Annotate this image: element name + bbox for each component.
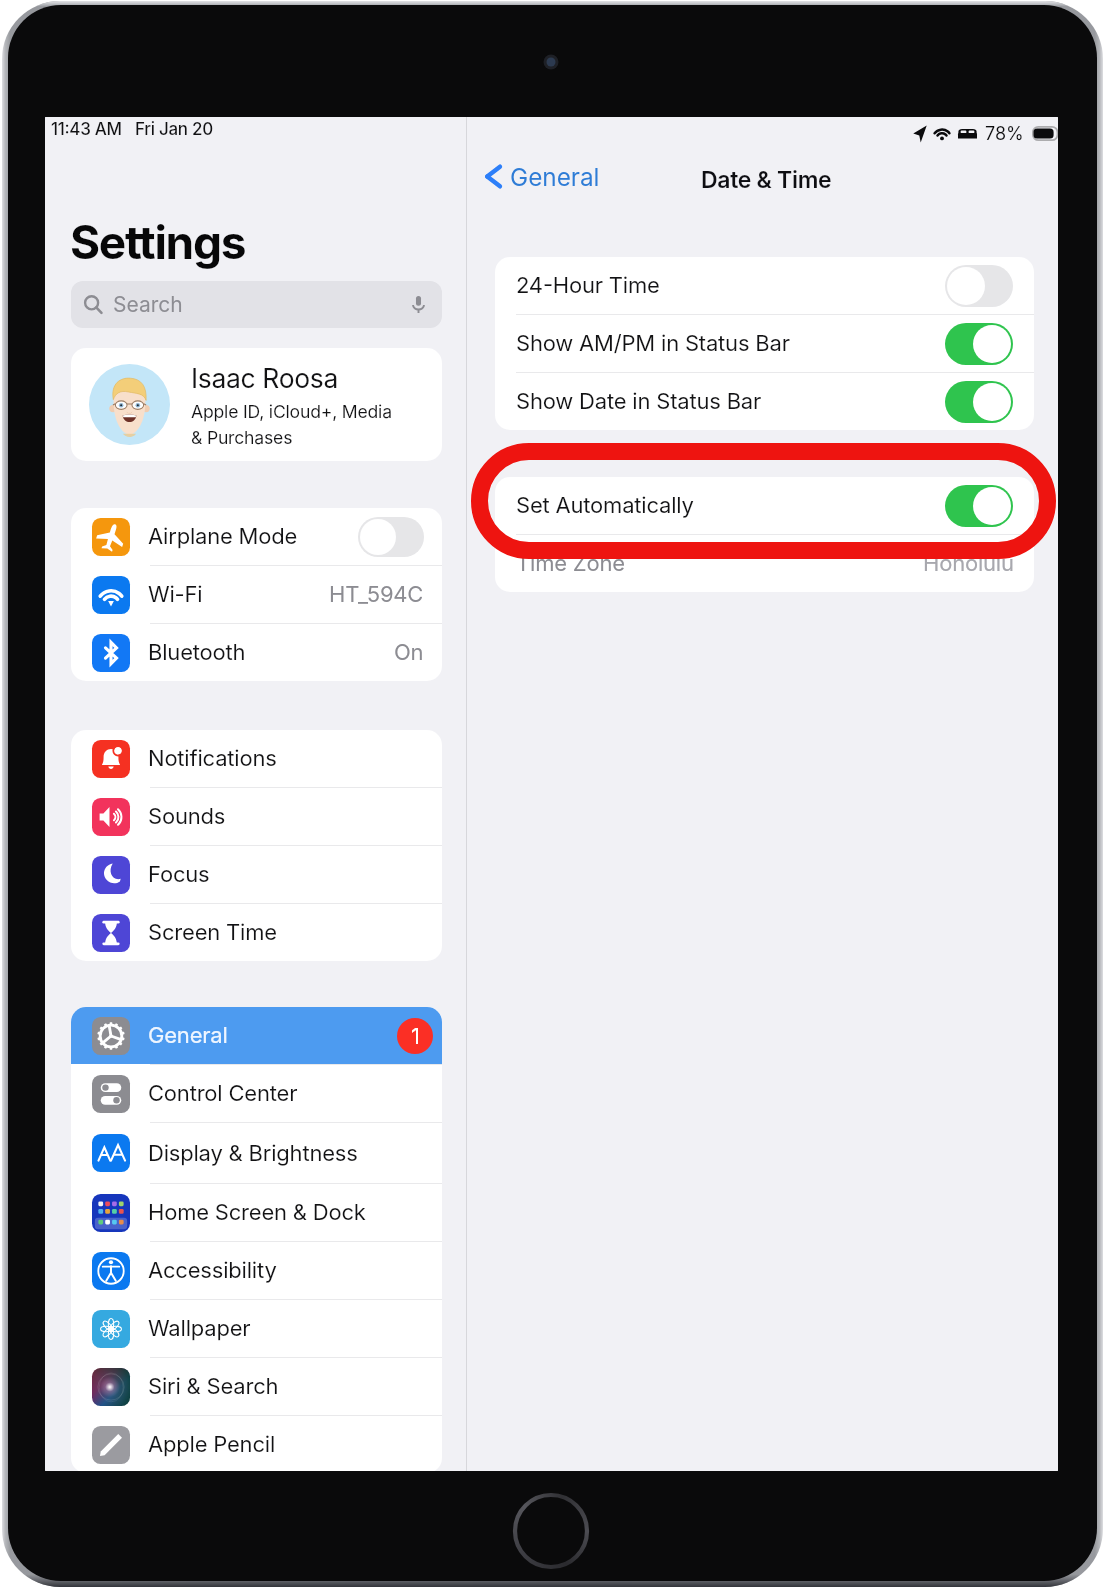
- staticText: General: [148, 1022, 228, 1049]
- staticText: Fri Jan 20: [135, 119, 213, 140]
- button[interactable]: Wi-Fi: [71, 566, 442, 623]
- staticText: Notifications: [148, 745, 277, 772]
- button[interactable]: Show Date in Status Bar: [495, 373, 1034, 430]
- button[interactable]: Airplane Mode: [71, 508, 442, 565]
- button[interactable]: Notifications: [71, 730, 442, 787]
- staticText: 78%: [985, 123, 1024, 145]
- staticText: 11:43 AM: [51, 119, 122, 140]
- button[interactable]: Apple Pencil: [71, 1416, 442, 1471]
- button[interactable]: 24-Hour Time: [495, 257, 1034, 314]
- staticText: Sounds: [148, 803, 226, 830]
- staticText: Date & Time: [701, 166, 832, 194]
- button[interactable]: Apple ID account: Isaac Roosa: [71, 348, 442, 461]
- button[interactable]: Toggle on: [945, 381, 1013, 423]
- staticText: Wi-Fi: [148, 581, 203, 608]
- button[interactable]: Set Automatically: [495, 477, 1034, 534]
- button[interactable]: Toggle off: [358, 517, 424, 557]
- staticText: Control Center: [148, 1080, 298, 1107]
- button[interactable]: Siri & Search: [71, 1358, 442, 1415]
- staticText: Set Automatically: [516, 492, 694, 519]
- button[interactable]: Search: [71, 281, 442, 328]
- staticText: Home Screen & Dock: [148, 1199, 366, 1226]
- staticText: Show AM/PM in Status Bar: [516, 330, 790, 357]
- button[interactable]: Home Screen & Dock: [71, 1184, 442, 1241]
- staticText: Honolulu: [923, 550, 1014, 577]
- staticText: Time Zone: [516, 550, 625, 577]
- button[interactable]: Control Center: [71, 1065, 442, 1122]
- staticText: Display & Brightness: [148, 1140, 358, 1167]
- staticText: On: [394, 639, 424, 666]
- staticText: HT_594C: [329, 581, 424, 608]
- button[interactable]: Back to General: [482, 159, 603, 194]
- staticText: Settings: [70, 214, 246, 270]
- staticText: Show Date in Status Bar: [516, 388, 762, 415]
- staticText: Screen Time: [148, 919, 277, 946]
- button[interactable]: Time Zone: [495, 535, 1034, 592]
- button[interactable]: Bluetooth: [71, 624, 442, 681]
- staticText: Search: [113, 292, 183, 317]
- button[interactable]: Display & Brightness: [71, 1123, 442, 1183]
- staticText: Accessibility: [148, 1257, 277, 1284]
- staticText: General: [510, 162, 600, 191]
- button[interactable]: Sounds: [71, 788, 442, 845]
- staticText: Wallpaper: [148, 1315, 251, 1342]
- staticText: Siri & Search: [148, 1373, 279, 1400]
- button[interactable]: Toggle off: [945, 265, 1013, 307]
- staticText: Isaac Roosa: [191, 362, 338, 394]
- staticText: Bluetooth: [148, 639, 246, 666]
- staticText: Focus: [148, 861, 210, 888]
- button[interactable]: General: [71, 1007, 442, 1064]
- button[interactable]: Wallpaper: [71, 1300, 442, 1357]
- button[interactable]: Toggle on: [945, 485, 1013, 527]
- staticText: Apple ID, iCloud+, Media & Purchases: [191, 401, 392, 448]
- staticText: Apple Pencil: [148, 1431, 276, 1458]
- button[interactable]: Accessibility: [71, 1242, 442, 1299]
- staticText: Airplane Mode: [148, 523, 298, 550]
- button[interactable]: Focus: [71, 846, 442, 903]
- staticText: 1: [411, 1023, 420, 1050]
- button[interactable]: Screen Time: [71, 904, 442, 961]
- staticText: 24-Hour Time: [516, 272, 660, 299]
- button[interactable]: Toggle on: [945, 323, 1013, 365]
- button[interactable]: Show AM/PM in Status Bar: [495, 315, 1034, 372]
